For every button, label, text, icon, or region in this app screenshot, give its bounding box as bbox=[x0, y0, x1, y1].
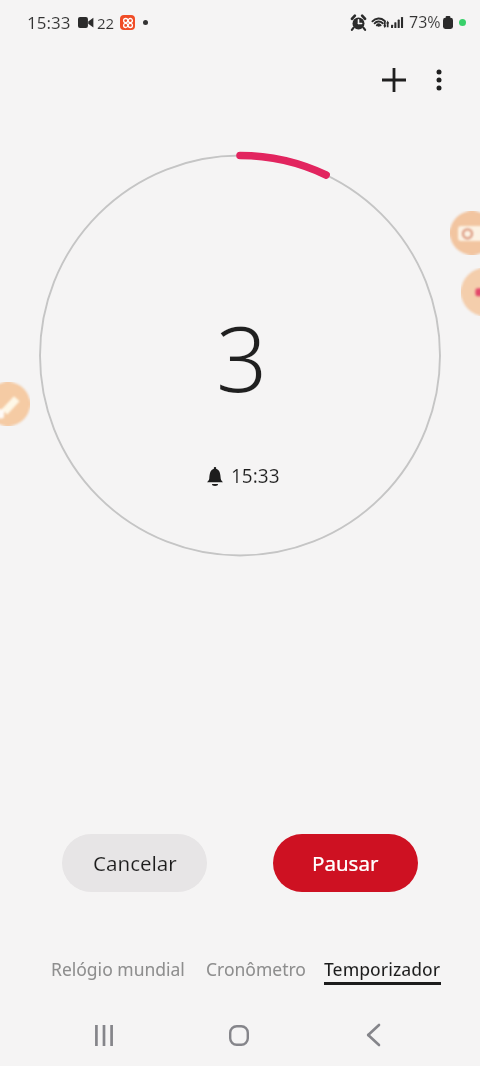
staticText: 22 bbox=[97, 13, 115, 33]
button[interactable]: Pausar bbox=[273, 834, 418, 892]
staticText: Temporizador bbox=[324, 957, 441, 981]
button[interactable]: Cancelar bbox=[62, 834, 207, 892]
button[interactable]: Recent apps bbox=[74, 1009, 134, 1061]
staticText: 73% bbox=[409, 11, 441, 33]
button[interactable]: Temporizador bbox=[312, 949, 453, 993]
button[interactable]: Back bbox=[343, 1009, 403, 1061]
staticText: Pausar bbox=[312, 849, 379, 877]
button[interactable]: More options bbox=[415, 56, 463, 104]
staticText: Cronômetro bbox=[206, 957, 306, 981]
button[interactable]: Cronômetro bbox=[194, 949, 318, 989]
staticText: 15:33 bbox=[231, 463, 280, 489]
button[interactable]: Add timer bbox=[370, 56, 418, 104]
staticText: 3 bbox=[216, 296, 268, 396]
staticText: Relógio mundial bbox=[51, 957, 185, 981]
staticText: Cancelar bbox=[93, 849, 177, 877]
button[interactable]: Home bbox=[209, 1009, 269, 1061]
staticText: 15:33 bbox=[27, 11, 71, 34]
button[interactable]: Relógio mundial bbox=[39, 949, 197, 989]
